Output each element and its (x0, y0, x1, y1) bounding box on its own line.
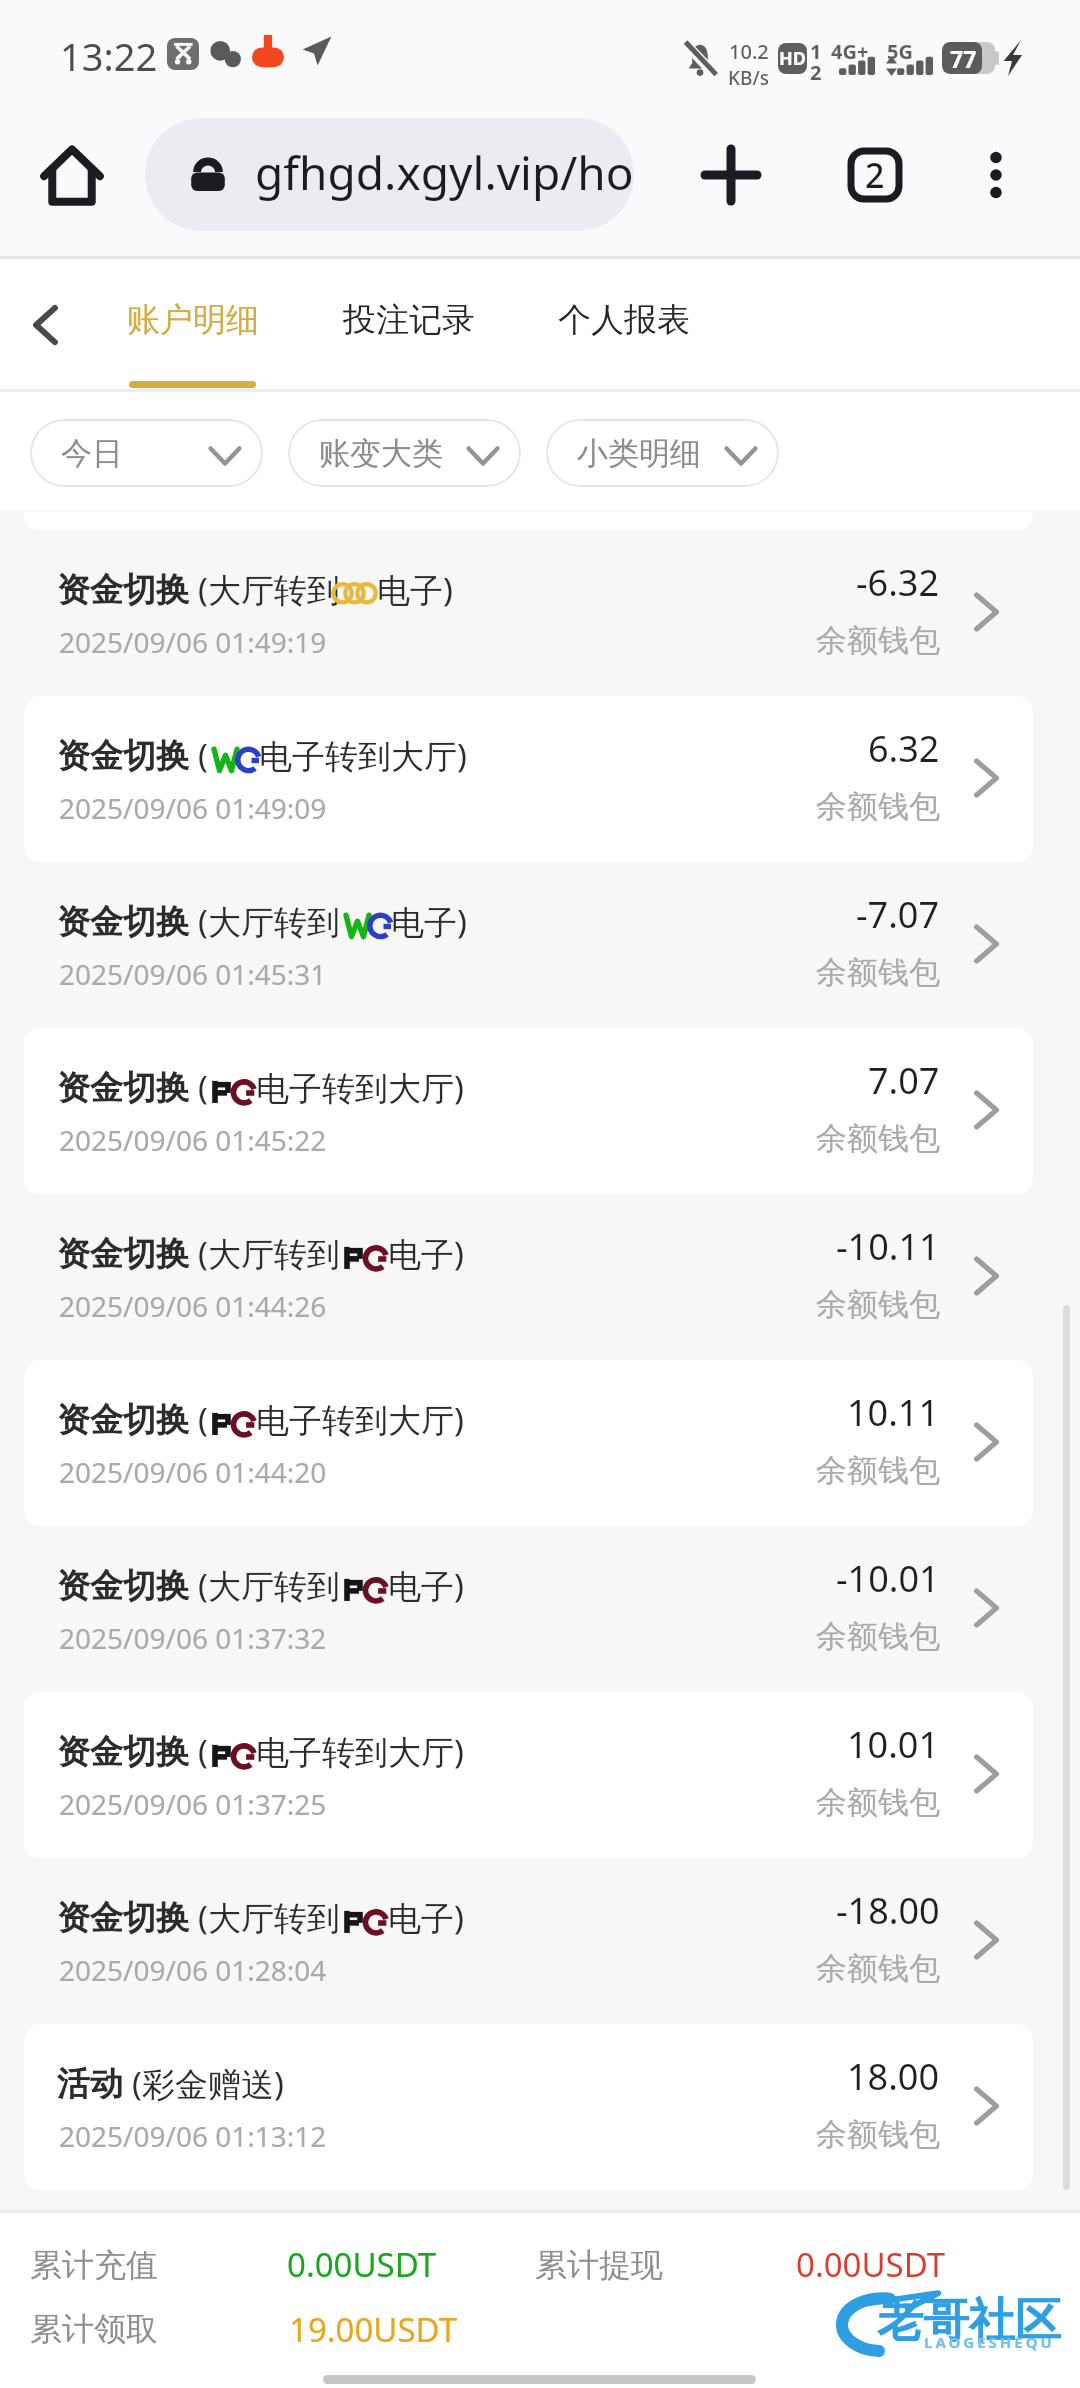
staticText: 2025/09/06 01:37:32 (59, 1619, 327, 1657)
staticText: ( (198, 1729, 208, 1774)
staticText: 电子) (388, 1895, 464, 1940)
staticText: 余额钱包 (816, 1285, 940, 1324)
staticText: 余额钱包 (816, 1783, 940, 1822)
staticText: 4G+ (831, 38, 869, 65)
button[interactable]: 资金切换 (24, 1028, 1033, 1194)
button[interactable]: 个人报表 (542, 265, 706, 375)
staticText: 电子转到大厅) (256, 1065, 464, 1110)
staticText: -7.07 (856, 890, 940, 939)
staticText: 老哥社区 (877, 2292, 1061, 2350)
staticText: 资金切换 (57, 1233, 189, 1275)
button[interactable]: 小类明细 (546, 419, 779, 487)
staticText: ( (198, 1065, 208, 1110)
staticText: (大厅转到 (198, 1563, 340, 1608)
staticText: LAOGESHEQU (924, 2332, 1055, 2352)
staticText: (大厅转到 (198, 567, 340, 612)
button[interactable]: 今日 (30, 419, 263, 487)
staticText: 个人报表 (558, 299, 690, 341)
staticText: 投注记录 (343, 299, 475, 341)
button[interactable]: 活动 (24, 2024, 1033, 2190)
staticText: -10.11 (836, 1222, 940, 1271)
staticText: 电子) (377, 567, 453, 612)
staticText: (大厅转到 (198, 1895, 340, 1940)
button[interactable]: 资金切换 (24, 530, 1033, 696)
staticText: 6.32 (868, 724, 940, 773)
staticText: (彩金赠送) (132, 2061, 284, 2106)
button[interactable]: 账变大类 (288, 419, 521, 487)
staticText: 累计提现 (535, 2245, 663, 2285)
staticText: 10.2 (729, 38, 769, 65)
staticText: 2025/09/06 01:45:31 (59, 955, 327, 993)
staticText: 电子转到大厅) (256, 1397, 464, 1442)
staticText: 今日 (61, 434, 123, 473)
staticText: 余额钱包 (816, 953, 940, 992)
staticText: 余额钱包 (816, 787, 940, 826)
button[interactable]: 资金切换 (24, 1692, 1033, 1858)
staticText: 2 (865, 152, 885, 198)
staticText: 13:22 (60, 30, 158, 82)
staticText: 资金切换 (57, 735, 189, 777)
button[interactable]: More options (952, 131, 1040, 219)
button[interactable]: 资金切换 (24, 1858, 1033, 2024)
staticText: 账户明细 (127, 299, 259, 341)
staticText: 资金切换 (57, 1067, 189, 1109)
staticText: ( (198, 1397, 208, 1442)
staticText: 余额钱包 (816, 1617, 940, 1656)
button[interactable]: 资金切换 (24, 862, 1033, 1028)
button[interactable]: 投注记录 (327, 265, 491, 375)
staticText: (大厅转到 (198, 899, 340, 944)
staticText: 电子转到大厅) (256, 1729, 464, 1774)
staticText: 资金切换 (57, 1897, 189, 1939)
staticText: 电子) (391, 899, 467, 944)
button[interactable]: Back (5, 285, 85, 365)
staticText: gfhgd.xgyl.vip/ho (255, 141, 634, 204)
staticText: 0.00USDT (796, 2242, 946, 2287)
staticText: HD (779, 46, 806, 71)
button[interactable]: 资金切换 (24, 1360, 1033, 1526)
staticText: -6.32 (856, 558, 940, 607)
button[interactable]: 资金切换 (24, 1526, 1033, 1692)
button[interactable]: 资金切换 (24, 696, 1033, 862)
staticText: 2025/09/06 01:49:09 (59, 789, 327, 827)
staticText: ( (198, 733, 208, 778)
button[interactable]: gfhgd.xgyl.vip/ho (145, 118, 634, 231)
staticText: 77 (950, 43, 977, 74)
staticText: 电子转到大厅) (259, 733, 467, 778)
staticText: 资金切换 (57, 569, 189, 611)
staticText: 资金切换 (57, 1399, 189, 1441)
staticText: 10.11 (847, 1388, 940, 1437)
staticText: 2025/09/06 01:13:12 (59, 2117, 327, 2155)
staticText: KB/s (728, 65, 769, 91)
staticText: 18.00 (847, 2052, 940, 2101)
staticText: 2025/09/06 01:28:04 (59, 1951, 327, 1989)
button[interactable]: 资金切换 (24, 1194, 1033, 1360)
staticText: -10.01 (836, 1554, 940, 1603)
staticText: 19.00USDT (289, 2307, 458, 2352)
staticText: 活动 (57, 2063, 123, 2105)
staticText: 2025/09/06 01:45:22 (59, 1121, 327, 1159)
staticText: 2025/09/06 01:44:26 (59, 1287, 327, 1325)
button[interactable]: New tab (687, 131, 775, 219)
staticText: 资金切换 (57, 1565, 189, 1607)
staticText: 7.07 (868, 1056, 940, 1105)
staticText: 2025/09/06 01:49:19 (59, 623, 327, 661)
staticText: 累计领取 (30, 2309, 158, 2349)
staticText: -18.00 (836, 1886, 940, 1935)
staticText: 余额钱包 (816, 2115, 940, 2154)
staticText: 1 (810, 38, 822, 65)
staticText: 5G (887, 38, 913, 65)
staticText: 2025/09/06 01:37:25 (59, 1785, 327, 1823)
staticText: 余额钱包 (816, 1451, 940, 1490)
staticText: (大厅转到 (198, 1231, 340, 1276)
staticText: 2 (810, 59, 822, 86)
staticText: 账变大类 (319, 434, 443, 473)
staticText: 余额钱包 (816, 1119, 940, 1158)
button[interactable]: Home (28, 131, 116, 219)
staticText: 10.01 (847, 1720, 940, 1769)
staticText: 小类明细 (577, 434, 701, 473)
staticText: 余额钱包 (816, 1949, 940, 1988)
staticText: 电子) (388, 1563, 464, 1608)
button[interactable]: Tabs (831, 131, 919, 219)
staticText: 电子) (388, 1231, 464, 1276)
button[interactable]: 账户明细 (111, 265, 275, 375)
